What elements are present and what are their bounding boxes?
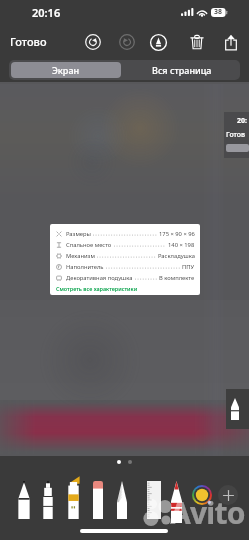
staticText: Наполнитель: [66, 263, 104, 271]
staticText: Экран: [52, 64, 80, 76]
staticText: ППУ: [182, 263, 195, 271]
staticText: 20:: [237, 116, 247, 126]
button[interactable]: Red pen: [171, 481, 182, 523]
staticText: 140 × 198: [168, 241, 195, 249]
button[interactable]: Eraser: [93, 481, 103, 519]
button[interactable]: Colour: [192, 485, 212, 505]
staticText: Декоративная подушка: [66, 274, 133, 282]
button[interactable]: Готово: [10, 34, 47, 49]
staticText: Avito: [170, 492, 245, 533]
button[interactable]: Pen: [18, 481, 30, 519]
staticText: Раскладушка: [158, 252, 195, 260]
staticText: Спальное место: [66, 241, 112, 249]
button[interactable]: Lasso: [117, 481, 127, 519]
button[interactable]: Redo: [117, 32, 137, 52]
staticText: Механизм: [66, 252, 95, 260]
button[interactable]: Add: [218, 485, 238, 505]
button[interactable]: Marker: [43, 481, 53, 519]
staticText: 38: [214, 7, 223, 17]
button[interactable]: Вся страница: [123, 60, 240, 80]
staticText: 175 × 90 × 96: [159, 230, 195, 238]
staticText: В комплекте: [159, 274, 195, 282]
staticText: 20:16: [32, 5, 61, 20]
button[interactable]: Share: [221, 32, 241, 52]
button[interactable]: Markup: [148, 32, 168, 52]
button[interactable]: Highlighter: [67, 475, 80, 519]
staticText: Вся страница: [152, 64, 212, 76]
button[interactable]: Смотреть все характеристики: [56, 285, 138, 292]
button[interactable]: Ruler: [147, 481, 161, 519]
button[interactable]: Delete: [187, 32, 207, 52]
staticText: Размеры: [66, 230, 91, 238]
staticText: Готово: [226, 130, 249, 140]
button[interactable]: Экран: [11, 62, 121, 78]
button[interactable]: Undo: [83, 32, 103, 52]
